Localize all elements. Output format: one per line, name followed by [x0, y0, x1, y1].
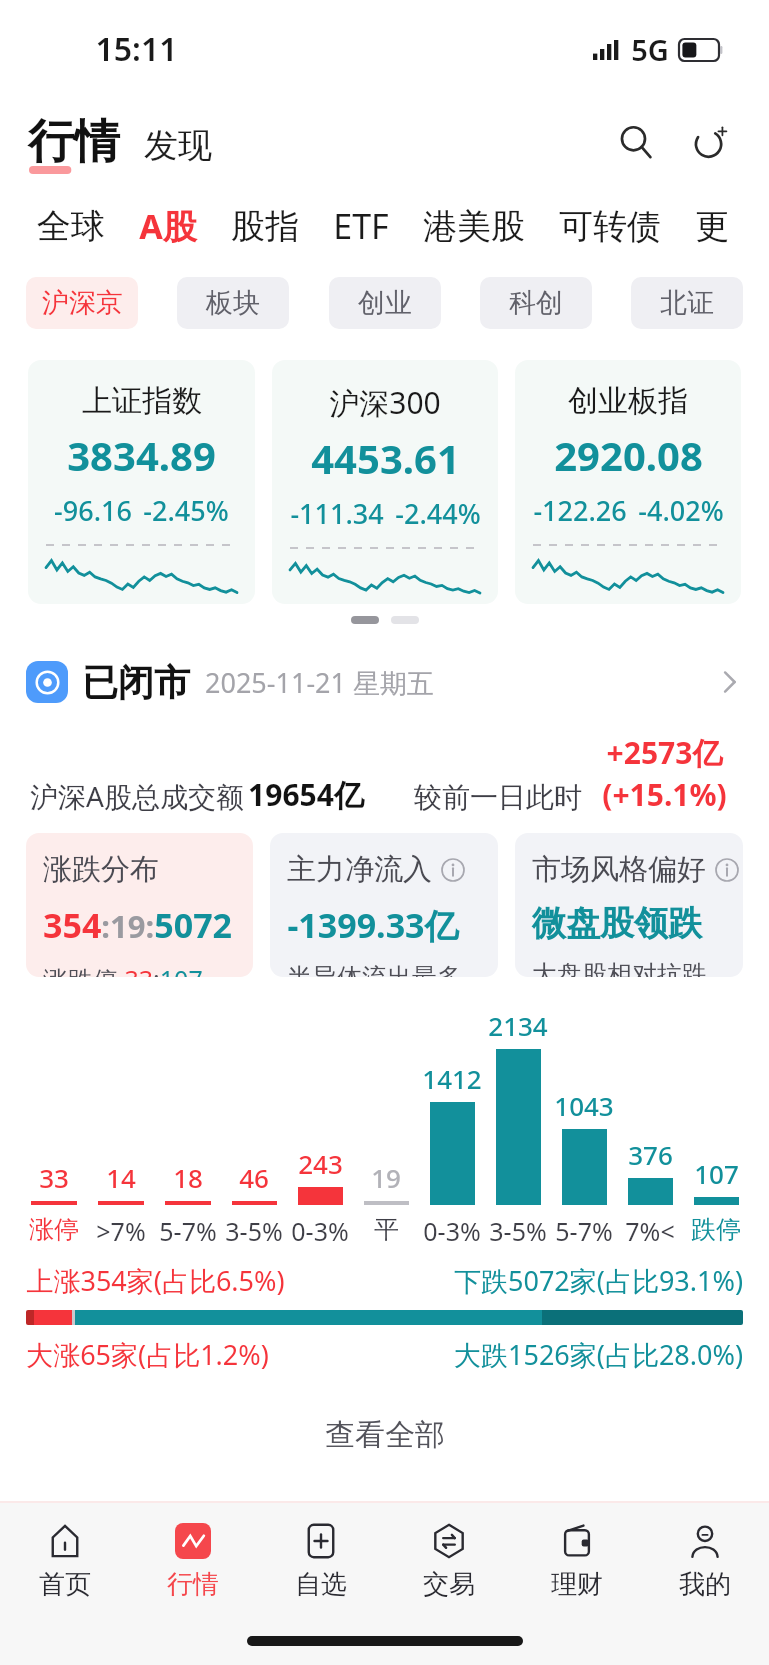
staticText: 板块	[206, 286, 260, 320]
staticText: 0-3%	[423, 1214, 481, 1248]
button[interactable]: 股指	[214, 195, 316, 258]
button[interactable]: 可转债	[542, 195, 678, 258]
staticText: 5-7%	[555, 1214, 613, 1248]
staticText: 创业	[358, 286, 412, 320]
button[interactable]: 已闭市	[0, 652, 769, 712]
staticText: 0-3%	[291, 1214, 349, 1248]
staticText: 14	[106, 1160, 136, 1195]
button[interactable]: 沪深京	[26, 277, 138, 329]
staticText: 市场风格偏好	[532, 851, 706, 888]
staticText: 发现	[144, 124, 212, 167]
staticText: 上证指数	[82, 382, 202, 420]
staticText: 上涨354家(占比6.5%)	[26, 1262, 285, 1299]
staticText: 交易	[423, 1568, 475, 1601]
staticText: 自选	[295, 1568, 347, 1601]
staticText: 北证	[660, 286, 714, 320]
staticText: 半导体流出最多	[287, 962, 462, 977]
staticText: -1399.33亿	[287, 902, 459, 948]
button[interactable]: 理财	[513, 1503, 641, 1617]
button[interactable]: 全球	[20, 195, 122, 258]
button[interactable]: 沪深300	[272, 360, 498, 604]
button[interactable]: Search	[609, 115, 663, 169]
staticText: 19654亿	[248, 774, 364, 815]
staticText: -96.16	[54, 492, 132, 529]
staticText: 行情	[167, 1568, 219, 1601]
staticText: 科创	[509, 286, 563, 320]
staticText: 首页	[39, 1568, 91, 1601]
staticText: 已闭市	[82, 660, 190, 705]
staticText: 46	[239, 1160, 269, 1195]
staticText: 创业板指	[568, 382, 688, 420]
staticText: 19	[371, 1160, 401, 1195]
staticText: 全球	[37, 205, 105, 248]
staticText: ETF	[333, 203, 389, 249]
staticText: -2.44%	[395, 495, 481, 532]
button[interactable]: 北证	[631, 277, 743, 329]
staticText: 涨停	[29, 1214, 79, 1245]
staticText: 376	[628, 1137, 673, 1172]
staticText: 平	[374, 1214, 399, 1245]
staticText: 4453.61	[311, 431, 460, 485]
button[interactable]: 自选	[257, 1503, 385, 1617]
staticText: 可转债	[559, 205, 661, 248]
button[interactable]: ETF	[316, 193, 406, 259]
staticText: 查看全部	[325, 1416, 445, 1454]
staticText: -4.02%	[638, 492, 724, 529]
button[interactable]: 发现	[144, 124, 212, 171]
staticText: A股	[139, 203, 197, 249]
staticText: -122.26	[533, 492, 627, 529]
staticText: 2025-11-21 星期五	[205, 664, 434, 701]
staticText: >7%	[96, 1214, 146, 1248]
staticText: 更	[695, 205, 729, 248]
button[interactable]: 创业板指	[515, 360, 741, 604]
staticText: 大涨65家(占比1.2%)	[26, 1336, 269, 1373]
button[interactable]: 市场风格偏好	[515, 833, 743, 977]
button[interactable]: Night mode	[683, 115, 737, 169]
staticText: +2573亿(+15.1%)	[586, 732, 743, 815]
button[interactable]: 更	[678, 195, 746, 258]
staticText: 沪深A股总成交额	[26, 777, 248, 815]
staticText: 5G	[631, 30, 669, 69]
staticText: 33	[39, 1160, 69, 1195]
button[interactable]: 主力净流入	[270, 833, 498, 977]
button[interactable]: 交易	[385, 1503, 513, 1617]
staticText: 15:11	[95, 27, 178, 71]
staticText: 3834.89	[67, 428, 216, 482]
button[interactable]: 板块	[177, 277, 289, 329]
staticText: 下跌5072家(占比93.1%)	[454, 1262, 743, 1299]
staticText: 7%<	[625, 1214, 675, 1248]
button[interactable]: 涨跌分布	[26, 833, 253, 977]
staticText: 5-7%	[159, 1214, 217, 1248]
staticText: 涨跌分布	[43, 851, 159, 888]
staticText: 沪深300	[329, 382, 441, 423]
staticText: 沪深京	[42, 286, 123, 320]
staticText: 我的	[679, 1568, 731, 1601]
staticText: 3-5%	[489, 1214, 547, 1248]
staticText: 2134	[488, 1008, 548, 1043]
button[interactable]: 创业	[329, 277, 441, 329]
staticText: 涨跌停 33:107	[43, 962, 203, 977]
staticText: 跌停	[691, 1214, 741, 1245]
staticText: 18	[173, 1160, 203, 1195]
staticText: 大盘股相对抗跌	[532, 959, 707, 977]
staticText: -111.34	[290, 495, 384, 532]
staticText: -2.45%	[143, 492, 229, 529]
button[interactable]: 科创	[480, 277, 592, 329]
button[interactable]: 港美股	[406, 195, 542, 258]
button[interactable]: A股	[122, 193, 214, 259]
staticText: 1412	[422, 1061, 482, 1096]
staticText: 理财	[551, 1568, 603, 1601]
staticText: 2920.08	[554, 428, 703, 482]
button[interactable]: 上证指数	[28, 360, 255, 604]
button[interactable]: 我的	[641, 1503, 769, 1617]
button[interactable]: 行情	[129, 1503, 257, 1617]
staticText: 主力净流入	[287, 851, 432, 888]
staticText: 243	[298, 1146, 343, 1181]
staticText: 股指	[231, 205, 299, 248]
staticText: 较前一日此时	[410, 777, 586, 815]
staticText: 行情	[28, 113, 120, 171]
button[interactable]: 首页	[0, 1503, 129, 1617]
staticText: 微盘股领跌	[532, 902, 702, 945]
button[interactable]: 查看全部	[0, 1404, 769, 1466]
staticText: 港美股	[423, 205, 525, 248]
